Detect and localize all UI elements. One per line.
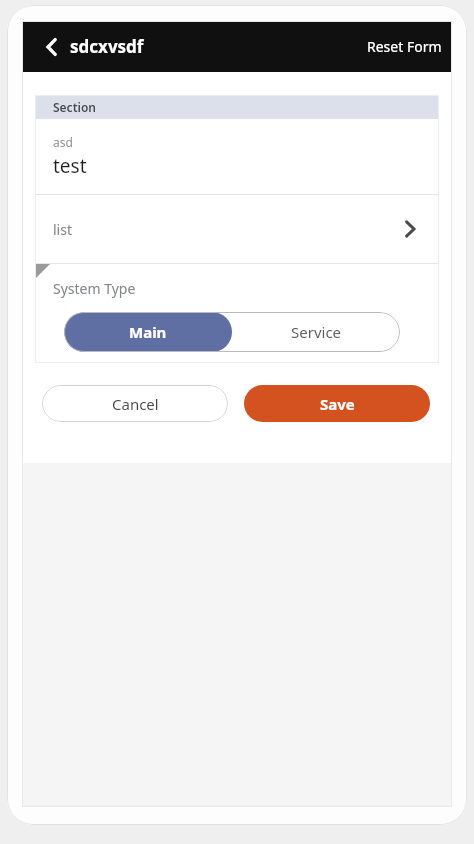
button[interactable]: Back bbox=[30, 25, 74, 69]
staticText: Service bbox=[291, 322, 342, 342]
staticText: Cancel bbox=[112, 394, 159, 414]
button[interactable]: Main bbox=[64, 312, 232, 352]
button[interactable]: Save bbox=[244, 385, 430, 422]
button[interactable]: list bbox=[35, 195, 439, 263]
button[interactable]: Service bbox=[232, 312, 400, 352]
button[interactable]: Cancel bbox=[42, 385, 228, 422]
staticText: Save bbox=[320, 394, 355, 414]
staticText: Reset Form bbox=[367, 37, 442, 56]
staticText: Main bbox=[129, 322, 167, 342]
staticText: asd bbox=[53, 134, 73, 150]
staticText: test bbox=[53, 153, 87, 179]
staticText: list bbox=[53, 220, 72, 239]
staticText: System Type bbox=[53, 279, 136, 298]
button[interactable]: asd bbox=[35, 119, 439, 194]
staticText: Section bbox=[53, 99, 96, 115]
button[interactable]: Reset Form bbox=[357, 27, 452, 66]
staticText: sdcxvsdf bbox=[70, 35, 144, 58]
